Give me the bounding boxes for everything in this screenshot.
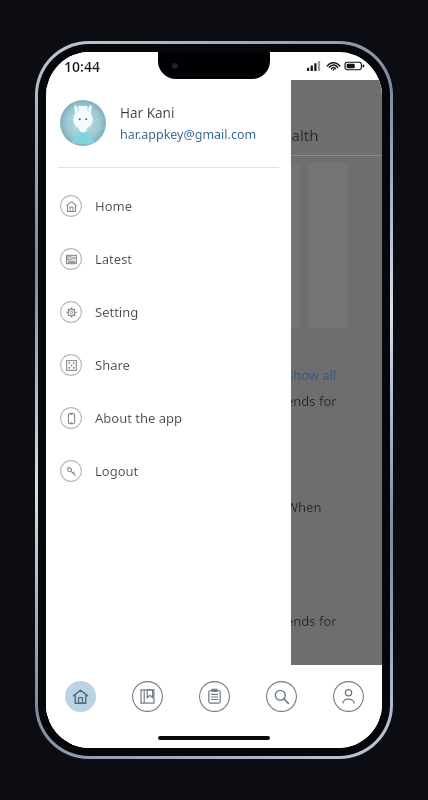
staticText: Setting	[95, 303, 139, 321]
staticText: ends for	[286, 612, 337, 630]
button[interactable]: Share	[46, 343, 291, 386]
button[interactable]: About the app	[46, 396, 291, 439]
staticText: Health	[272, 125, 319, 145]
button[interactable]: Home	[46, 184, 291, 227]
button[interactable]: Notes	[181, 665, 248, 727]
staticText: About the app	[95, 409, 182, 427]
button[interactable]: Profile	[315, 665, 382, 727]
button[interactable]: Home	[46, 665, 114, 727]
staticText: Latest	[95, 250, 133, 268]
staticText: Show all	[286, 366, 337, 384]
staticText: Share	[95, 356, 130, 374]
staticText: har.appkey@gmail.com	[120, 126, 257, 143]
staticText: Home	[95, 197, 132, 215]
staticText: 10:44	[64, 57, 100, 76]
button[interactable]: Latest	[114, 665, 181, 727]
button[interactable]: Latest	[46, 237, 291, 280]
staticText: ends for	[286, 392, 337, 410]
button[interactable]: Har Kani	[46, 96, 291, 150]
staticText: Logout	[95, 462, 139, 480]
staticText: When	[286, 498, 322, 516]
button[interactable]: Setting	[46, 290, 291, 333]
staticText: Har Kani	[120, 104, 175, 122]
button[interactable]: Search	[248, 665, 315, 727]
button[interactable]: Logout	[46, 449, 291, 492]
